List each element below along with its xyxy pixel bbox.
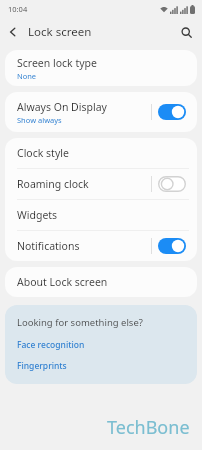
staticText: Lock screen xyxy=(28,24,92,40)
button[interactable]: Back xyxy=(0,19,26,45)
button[interactable]: Screen lock type xyxy=(5,50,197,86)
staticText: Roaming clock xyxy=(17,177,151,191)
button[interactable]: Always On Display xyxy=(5,92,197,132)
staticText: TechBone xyxy=(107,415,190,440)
button[interactable]: About Lock screen xyxy=(5,267,197,297)
button[interactable]: Search xyxy=(174,20,198,44)
button[interactable]: Toggle on xyxy=(151,231,197,261)
staticText: Looking for something else? xyxy=(17,316,143,329)
staticText: Notifications xyxy=(17,239,151,253)
staticText: Always On Display xyxy=(17,100,107,114)
button[interactable]: Widgets xyxy=(5,200,197,230)
staticText: Show always xyxy=(17,115,62,125)
button[interactable]: Roaming clock xyxy=(5,169,197,199)
button[interactable]: Notifications xyxy=(5,231,197,261)
button[interactable]: Fingerprints xyxy=(17,360,67,372)
button[interactable]: Face recognition xyxy=(17,339,85,351)
button[interactable]: Clock style xyxy=(5,138,197,168)
staticText: Widgets xyxy=(17,208,58,222)
button[interactable]: Toggle on xyxy=(151,92,197,132)
staticText: Face recognition xyxy=(17,339,85,351)
button[interactable]: Toggle off xyxy=(151,169,197,199)
staticText: About Lock screen xyxy=(17,275,108,289)
staticText: Screen lock type xyxy=(17,56,97,70)
staticText: 10:04 xyxy=(8,4,28,14)
staticText: None xyxy=(17,71,37,81)
staticText: Clock style xyxy=(17,146,69,160)
staticText: Fingerprints xyxy=(17,360,67,372)
